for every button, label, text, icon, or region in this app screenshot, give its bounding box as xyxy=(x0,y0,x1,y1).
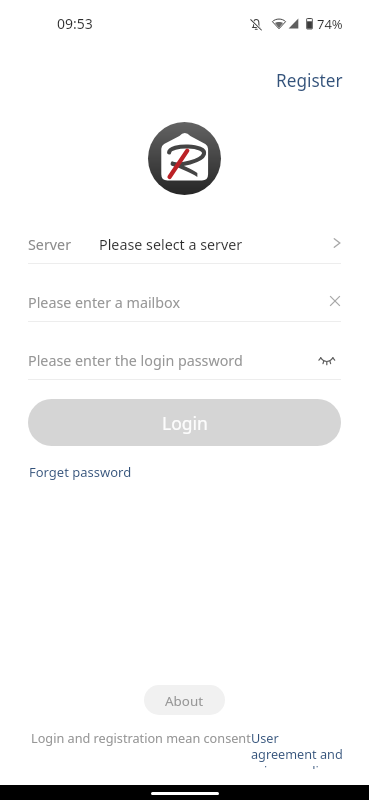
staticText: Please enter a mailbox xyxy=(28,293,181,312)
staticText: Login and registration mean consent xyxy=(31,729,251,746)
staticText: Login xyxy=(162,411,208,435)
staticText: 74% xyxy=(317,15,343,33)
button[interactable]: About xyxy=(144,685,225,715)
button[interactable]: Server xyxy=(28,212,341,254)
staticText: Forget password xyxy=(29,463,132,481)
button[interactable]: Select server xyxy=(319,232,341,254)
button[interactable]: User agreement and privacy policy xyxy=(251,729,347,769)
staticText: Server xyxy=(28,235,72,254)
button[interactable]: Clear xyxy=(319,290,341,312)
button[interactable]: Forget password xyxy=(20,459,141,485)
staticText: Please enter the login password xyxy=(28,351,243,370)
staticText: Please select a server xyxy=(99,235,243,254)
staticText: 09:53 xyxy=(57,14,93,33)
button[interactable]: Register xyxy=(267,66,352,95)
button[interactable]: Login xyxy=(28,399,341,446)
staticText: About xyxy=(165,692,204,710)
button[interactable]: Please enter a mailbox xyxy=(28,270,341,312)
button[interactable]: Show password xyxy=(319,348,341,370)
button[interactable]: Please enter the login password xyxy=(28,328,341,370)
staticText: Register xyxy=(276,69,343,92)
